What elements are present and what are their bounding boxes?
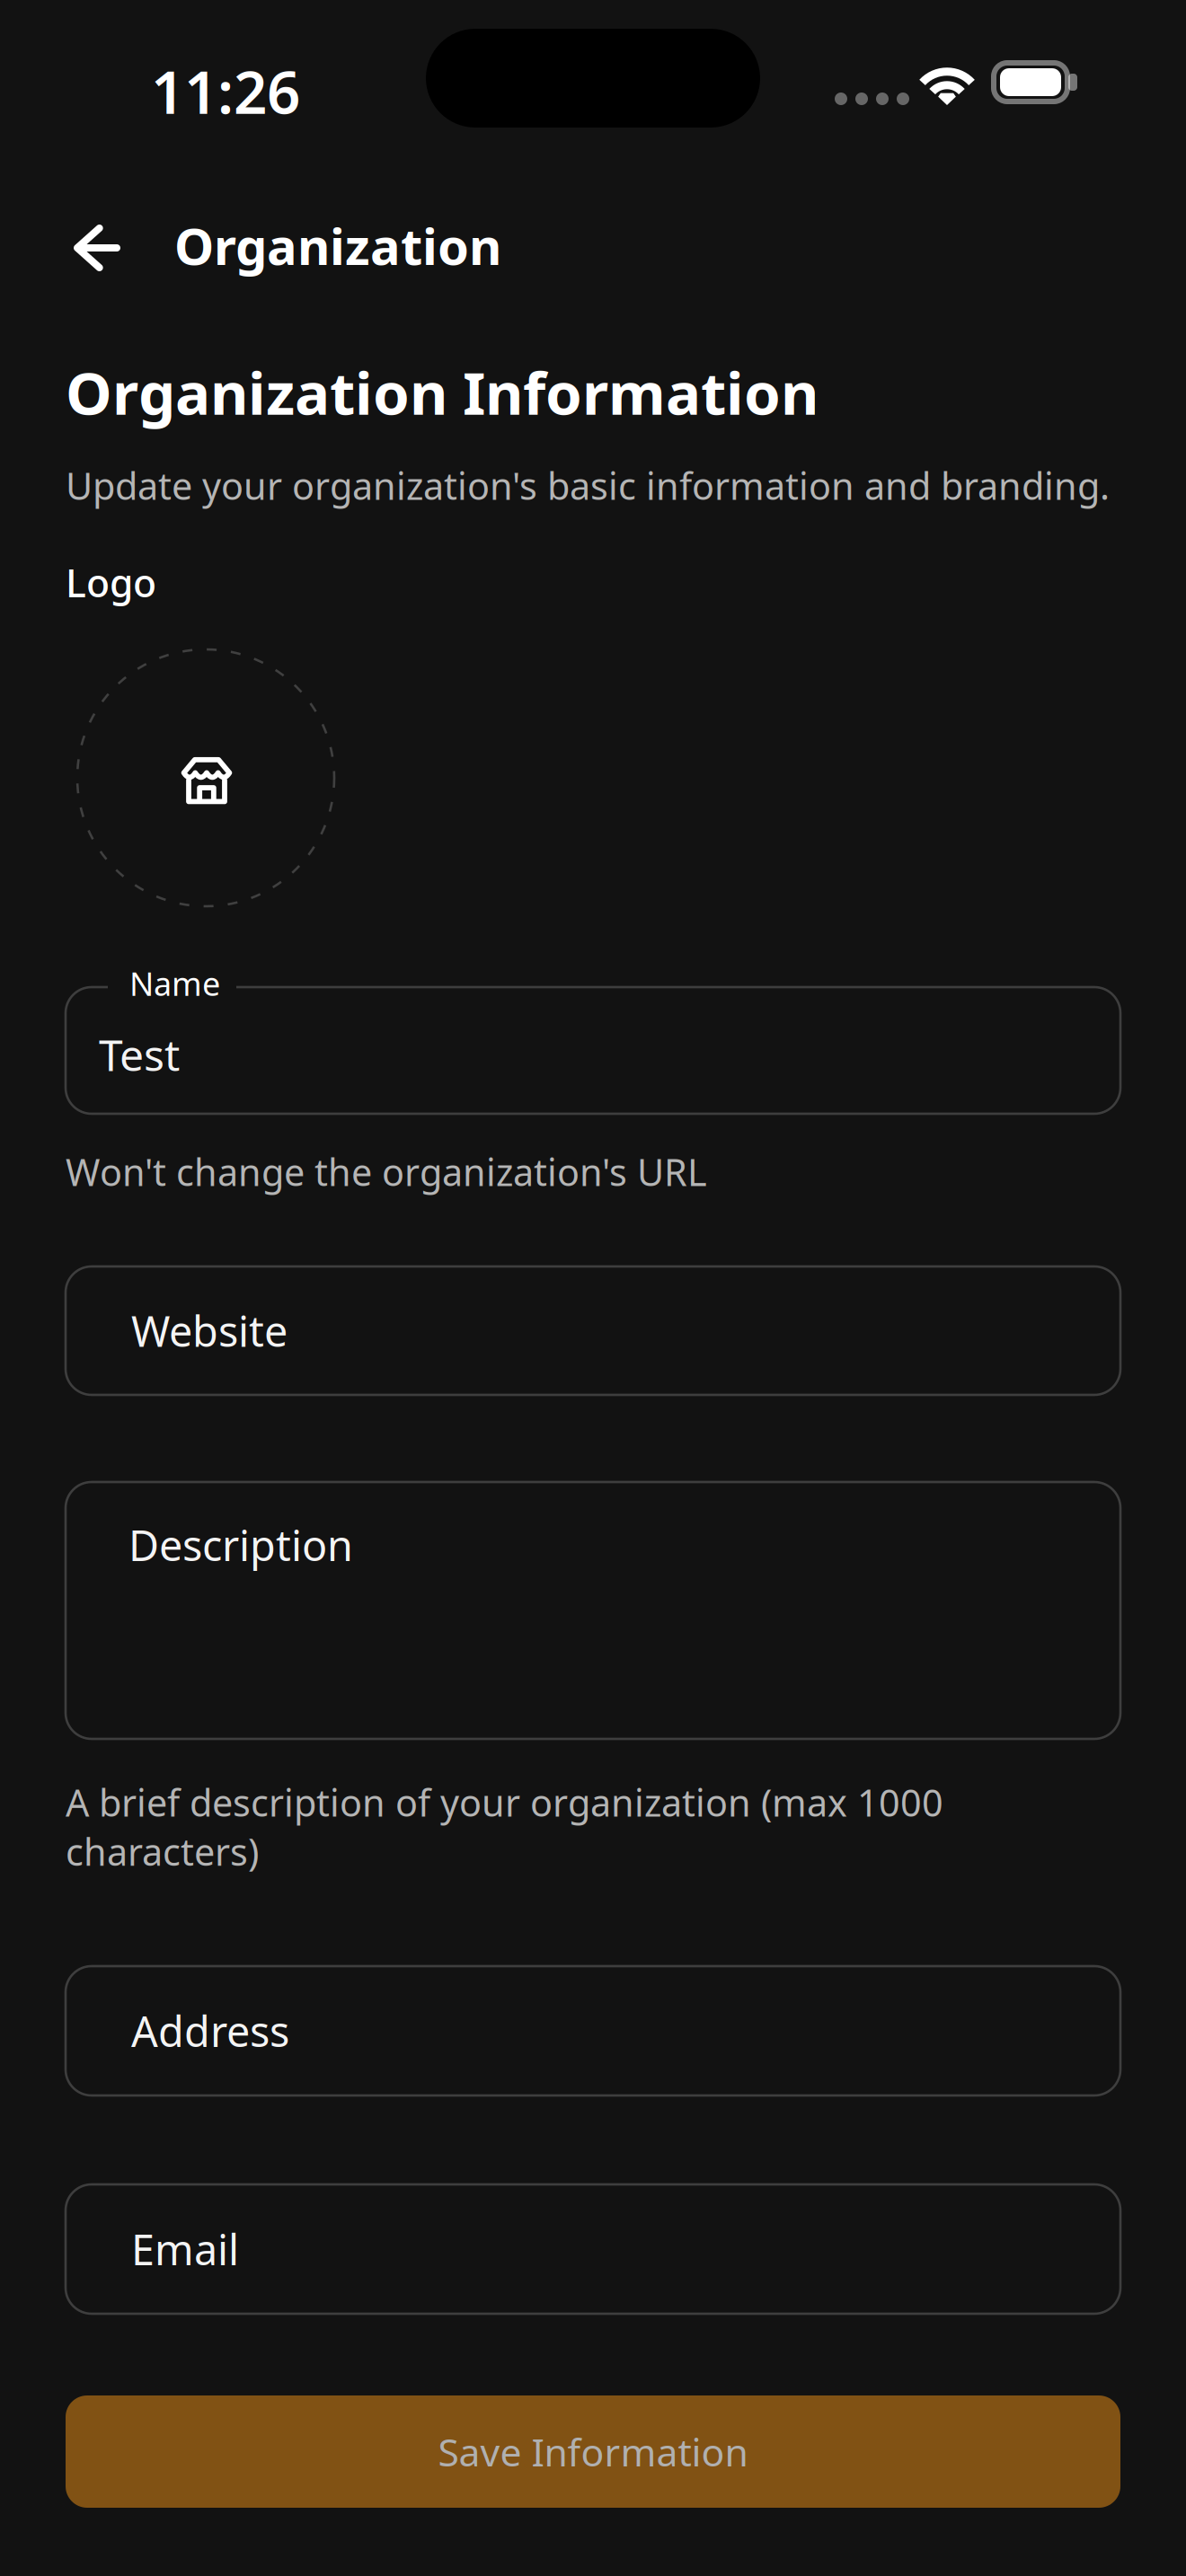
button[interactable]: Save Information — [66, 2395, 1120, 2508]
staticText: A brief description of your organization… — [66, 1778, 943, 1876]
button[interactable]: Email — [66, 2184, 1120, 2314]
staticText: Organization — [174, 212, 501, 279]
button[interactable]: Name — [66, 987, 1120, 1114]
staticText: Website — [131, 1303, 288, 1359]
staticText: Email — [131, 2221, 239, 2277]
staticText: Save Information — [438, 2426, 748, 2477]
staticText: Logo — [66, 557, 156, 608]
button[interactable]: Back — [54, 205, 140, 291]
staticText: Test — [99, 1026, 180, 1083]
button[interactable]: Address — [66, 1966, 1120, 2095]
staticText: Update your organization's basic informa… — [66, 461, 1110, 510]
staticText: Name — [129, 962, 220, 1005]
staticText: Organization Information — [66, 353, 819, 431]
button[interactable]: Description — [66, 1482, 1120, 1739]
button[interactable]: Upload logo — [77, 649, 334, 906]
staticText: 11:26 — [151, 52, 300, 130]
staticText: Address — [131, 2003, 289, 2059]
staticText: Won't change the organization's URL — [66, 1147, 707, 1196]
button[interactable]: Website — [66, 1266, 1120, 1395]
staticText: Description — [128, 1517, 353, 1573]
